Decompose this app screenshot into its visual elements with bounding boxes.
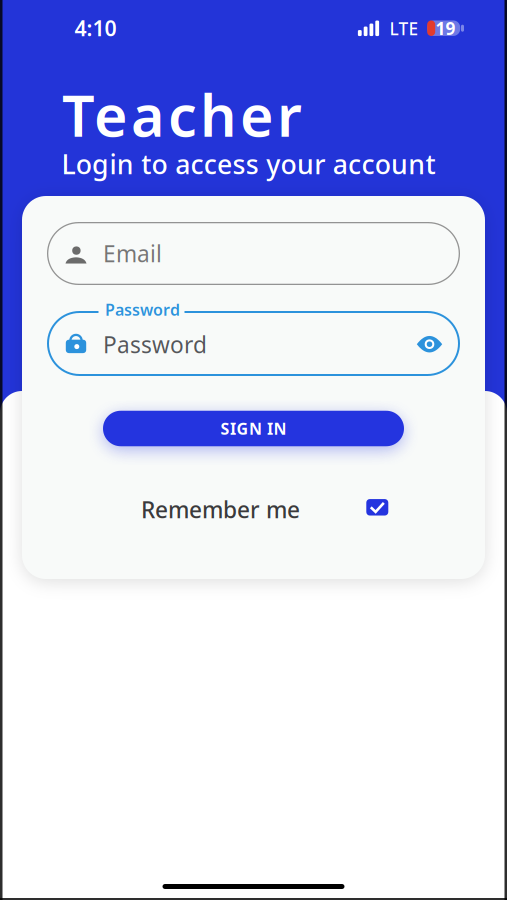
button[interactable]: Remember me xyxy=(366,499,388,516)
staticText: Login to access your account xyxy=(61,146,436,182)
staticText: 4:10 xyxy=(74,14,116,42)
button[interactable]: SIGN IN xyxy=(103,411,404,446)
button[interactable]: Show password xyxy=(412,329,446,359)
staticText: Remember me xyxy=(141,494,300,524)
staticText: 19 xyxy=(435,17,455,40)
staticText: Email xyxy=(103,238,162,268)
button[interactable]: Password xyxy=(47,311,460,376)
staticText: Password xyxy=(103,329,207,359)
staticText: Password xyxy=(105,299,180,320)
staticText: Teacher xyxy=(62,76,302,152)
staticText: LTE xyxy=(389,17,418,40)
button[interactable]: Email xyxy=(47,222,460,285)
staticText: SIGN IN xyxy=(220,418,286,439)
